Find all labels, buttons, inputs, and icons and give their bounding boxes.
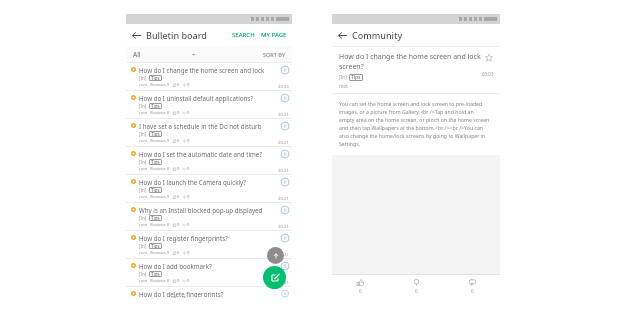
staticText: Reviews 0 (150, 222, 170, 228)
staticText: 20:21 (278, 280, 289, 286)
staticText: 0 (177, 194, 180, 200)
button[interactable]: Like (332, 275, 388, 297)
staticText: root (139, 278, 148, 284)
staticText: Tips (151, 103, 160, 109)
staticText: 0 (471, 288, 474, 294)
staticText: Reviews 0 (150, 194, 170, 200)
staticText: 0 (177, 138, 180, 144)
staticText: Reviews 0 (150, 138, 170, 144)
staticText: 0 (177, 110, 180, 116)
staticText: 20:21 (278, 168, 289, 174)
staticText: 0 (177, 166, 180, 172)
staticText: How do I change the home screen and lock (339, 52, 481, 62)
staticText: 0 (187, 222, 190, 228)
button[interactable]: Back (126, 25, 146, 45)
staticText: 0 (187, 110, 190, 116)
staticText: How do I add bookmark? (139, 262, 212, 270)
staticText: How do I uninstall default applications? (139, 94, 253, 102)
staticText: You can set the home screen and lock scr… (339, 100, 483, 107)
staticText: 20:23 (278, 84, 289, 90)
staticText: MY PAGE (261, 31, 287, 39)
button[interactable]: How do I change the home screen and lock (126, 63, 292, 91)
staticText: Tips (151, 243, 160, 249)
staticText: 0 (177, 278, 180, 284)
staticText: 0 (177, 250, 180, 256)
staticText: Reviews 0 (150, 110, 170, 116)
staticText: and then tap Wallpapers at the bottom.<b… (339, 124, 484, 131)
staticText: Reviews 0 (150, 250, 170, 256)
staticText: SEARCH (232, 31, 255, 39)
staticText: How do I set the automatic date and time… (139, 150, 263, 158)
staticText: 05:03 (482, 71, 494, 77)
staticText: 20:21 (278, 196, 289, 202)
staticText: Tips (151, 271, 160, 277)
staticText: [In] (339, 74, 347, 81)
staticText: [In] (139, 159, 147, 165)
button[interactable]: MY PAGE (258, 31, 290, 39)
staticText: [In] (139, 243, 147, 249)
staticText: I have set a schedule in the Do not dist… (139, 122, 262, 130)
staticText: [In] (139, 271, 147, 277)
button[interactable]: How do I set the automatic date and time… (126, 147, 292, 175)
button[interactable]: How do I uninstall default applications? (126, 91, 292, 119)
staticText: [In] (139, 187, 147, 193)
staticText: All (133, 50, 141, 59)
staticText: 0 (187, 138, 190, 144)
staticText: root (139, 222, 148, 228)
staticText: 20:21 (278, 252, 289, 258)
staticText: root (139, 250, 148, 256)
button[interactable]: How do I add bookmark? (126, 259, 292, 287)
staticText: [In] (139, 215, 147, 221)
button[interactable]: Scroll to top (267, 247, 284, 264)
staticText: Reviews 0 (150, 82, 170, 88)
staticText: 0 (177, 82, 180, 88)
button[interactable]: Helpful (388, 275, 444, 297)
staticText: [In] (139, 131, 147, 137)
button[interactable]: Why is an Install blocked pop-up display… (126, 203, 292, 231)
staticText: 20:21 (278, 112, 289, 118)
staticText: Why is an Install blocked pop-up display… (139, 206, 278, 214)
staticText: Tips (151, 187, 160, 193)
staticText: [In] (139, 75, 147, 81)
button[interactable]: How do I delete fingerprints? (126, 287, 292, 297)
button[interactable]: SEARCH (229, 31, 258, 39)
staticText: Tips (151, 215, 160, 221)
staticText: 0 (415, 288, 418, 294)
staticText: root (139, 166, 148, 172)
button[interactable]: Back (332, 25, 352, 45)
staticText: 0 (187, 250, 190, 256)
staticText: Reviews 0 (150, 166, 170, 172)
staticText: 0 (177, 222, 180, 228)
button[interactable]: I have set a schedule in the Do not dist… (126, 119, 292, 147)
staticText: How do I change the home screen and lock (139, 66, 265, 74)
staticText: Tips (151, 131, 160, 137)
staticText: root (139, 194, 148, 200)
staticText: [In] (139, 103, 147, 109)
staticText: Tips (151, 75, 160, 81)
staticText: Bulletin board (146, 29, 207, 41)
staticText: Community (352, 29, 403, 41)
staticText: also change the home/lock screens by goi… (339, 132, 486, 139)
staticText: Reviews 0 (150, 278, 170, 284)
staticText: 0 (187, 278, 190, 284)
staticText: 0 (187, 194, 190, 200)
button[interactable]: How do I register fingerprints? (126, 231, 292, 259)
staticText: root (339, 83, 348, 89)
staticText: 0 (359, 288, 362, 294)
staticText: root (139, 82, 148, 88)
staticText: images, or a picture from Gallery.<br />… (339, 108, 474, 115)
staticText: Tips (351, 74, 361, 81)
button[interactable]: Favorite (483, 52, 494, 63)
button[interactable]: All (126, 46, 257, 62)
button[interactable]: Compose (263, 266, 286, 289)
staticText: 0 (187, 166, 190, 172)
staticText: screen? (339, 62, 364, 72)
button[interactable]: SORT BY (257, 46, 292, 62)
staticText: How do I delete fingerprints? (139, 290, 224, 297)
staticText: 20:21 (278, 224, 289, 230)
button[interactable]: How do I launch the Camera quickly? (126, 175, 292, 203)
staticText: How do I launch the Camera quickly? (139, 178, 247, 186)
staticText: root (139, 110, 148, 116)
button[interactable]: Comment (444, 275, 500, 297)
staticText: 20:21 (278, 140, 289, 146)
